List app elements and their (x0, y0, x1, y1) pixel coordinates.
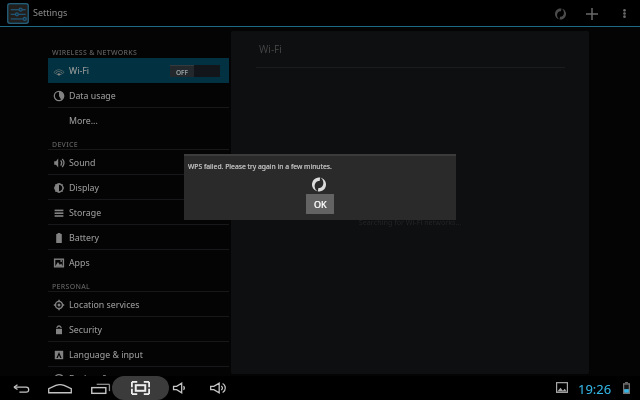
button[interactable]: Wi-Fi (48, 58, 229, 83)
staticText: Wi-Fi (259, 42, 282, 56)
staticText: OK (314, 198, 327, 210)
button[interactable]: Volume up (199, 376, 237, 400)
staticText: OFF (176, 68, 188, 77)
staticText: Backup & reset (69, 373, 132, 385)
button[interactable]: Add network (576, 0, 608, 27)
staticText: 19:26 (578, 380, 612, 398)
button[interactable]: OK (306, 194, 334, 214)
button[interactable]: Location services (48, 292, 229, 317)
button[interactable]: More... (48, 108, 229, 133)
staticText: Security (69, 324, 103, 336)
button[interactable]: Apps (48, 250, 229, 275)
staticText: WPS failed. Please try again in a few mi… (188, 162, 332, 171)
button[interactable]: More options (608, 0, 640, 27)
button[interactable]: Battery (48, 225, 229, 250)
staticText: More... (69, 115, 98, 127)
button[interactable]: Security (48, 317, 229, 342)
staticText: DEVICE (52, 140, 78, 150)
button[interactable]: Backup & reset (48, 367, 229, 390)
button[interactable]: Settings (7, 3, 29, 24)
button[interactable]: Screenshot captured (556, 382, 568, 393)
staticText: Location services (69, 299, 140, 311)
staticText: Wi-Fi (69, 65, 90, 77)
staticText: Language & input (69, 349, 143, 361)
staticText: Apps (69, 257, 90, 269)
button[interactable]: Recent apps (81, 376, 119, 400)
button[interactable]: Wi-Fi switch, off (170, 65, 220, 77)
button[interactable]: Screenshot (121, 376, 159, 400)
staticText: Settings (33, 6, 68, 18)
button[interactable]: Sound (48, 150, 229, 175)
staticText: Storage (69, 207, 102, 219)
staticText: WIRELESS & NETWORKS (52, 48, 138, 58)
button[interactable]: WPS push button (544, 0, 576, 27)
button[interactable]: Back (2, 376, 40, 400)
button[interactable]: Data usage (48, 83, 229, 108)
button[interactable]: Language & input (48, 342, 229, 367)
staticText: Searching for Wi-Fi networks… (231, 217, 589, 227)
staticText: Battery (69, 232, 100, 244)
staticText: PERSONAL (52, 282, 91, 292)
staticText: Data usage (69, 90, 116, 102)
staticText: Display (69, 182, 100, 194)
button[interactable]: Volume down (161, 376, 199, 400)
button[interactable]: Storage (48, 200, 229, 225)
button[interactable]: Display (48, 175, 229, 200)
button[interactable]: Home (41, 376, 79, 400)
staticText: Sound (69, 157, 96, 169)
